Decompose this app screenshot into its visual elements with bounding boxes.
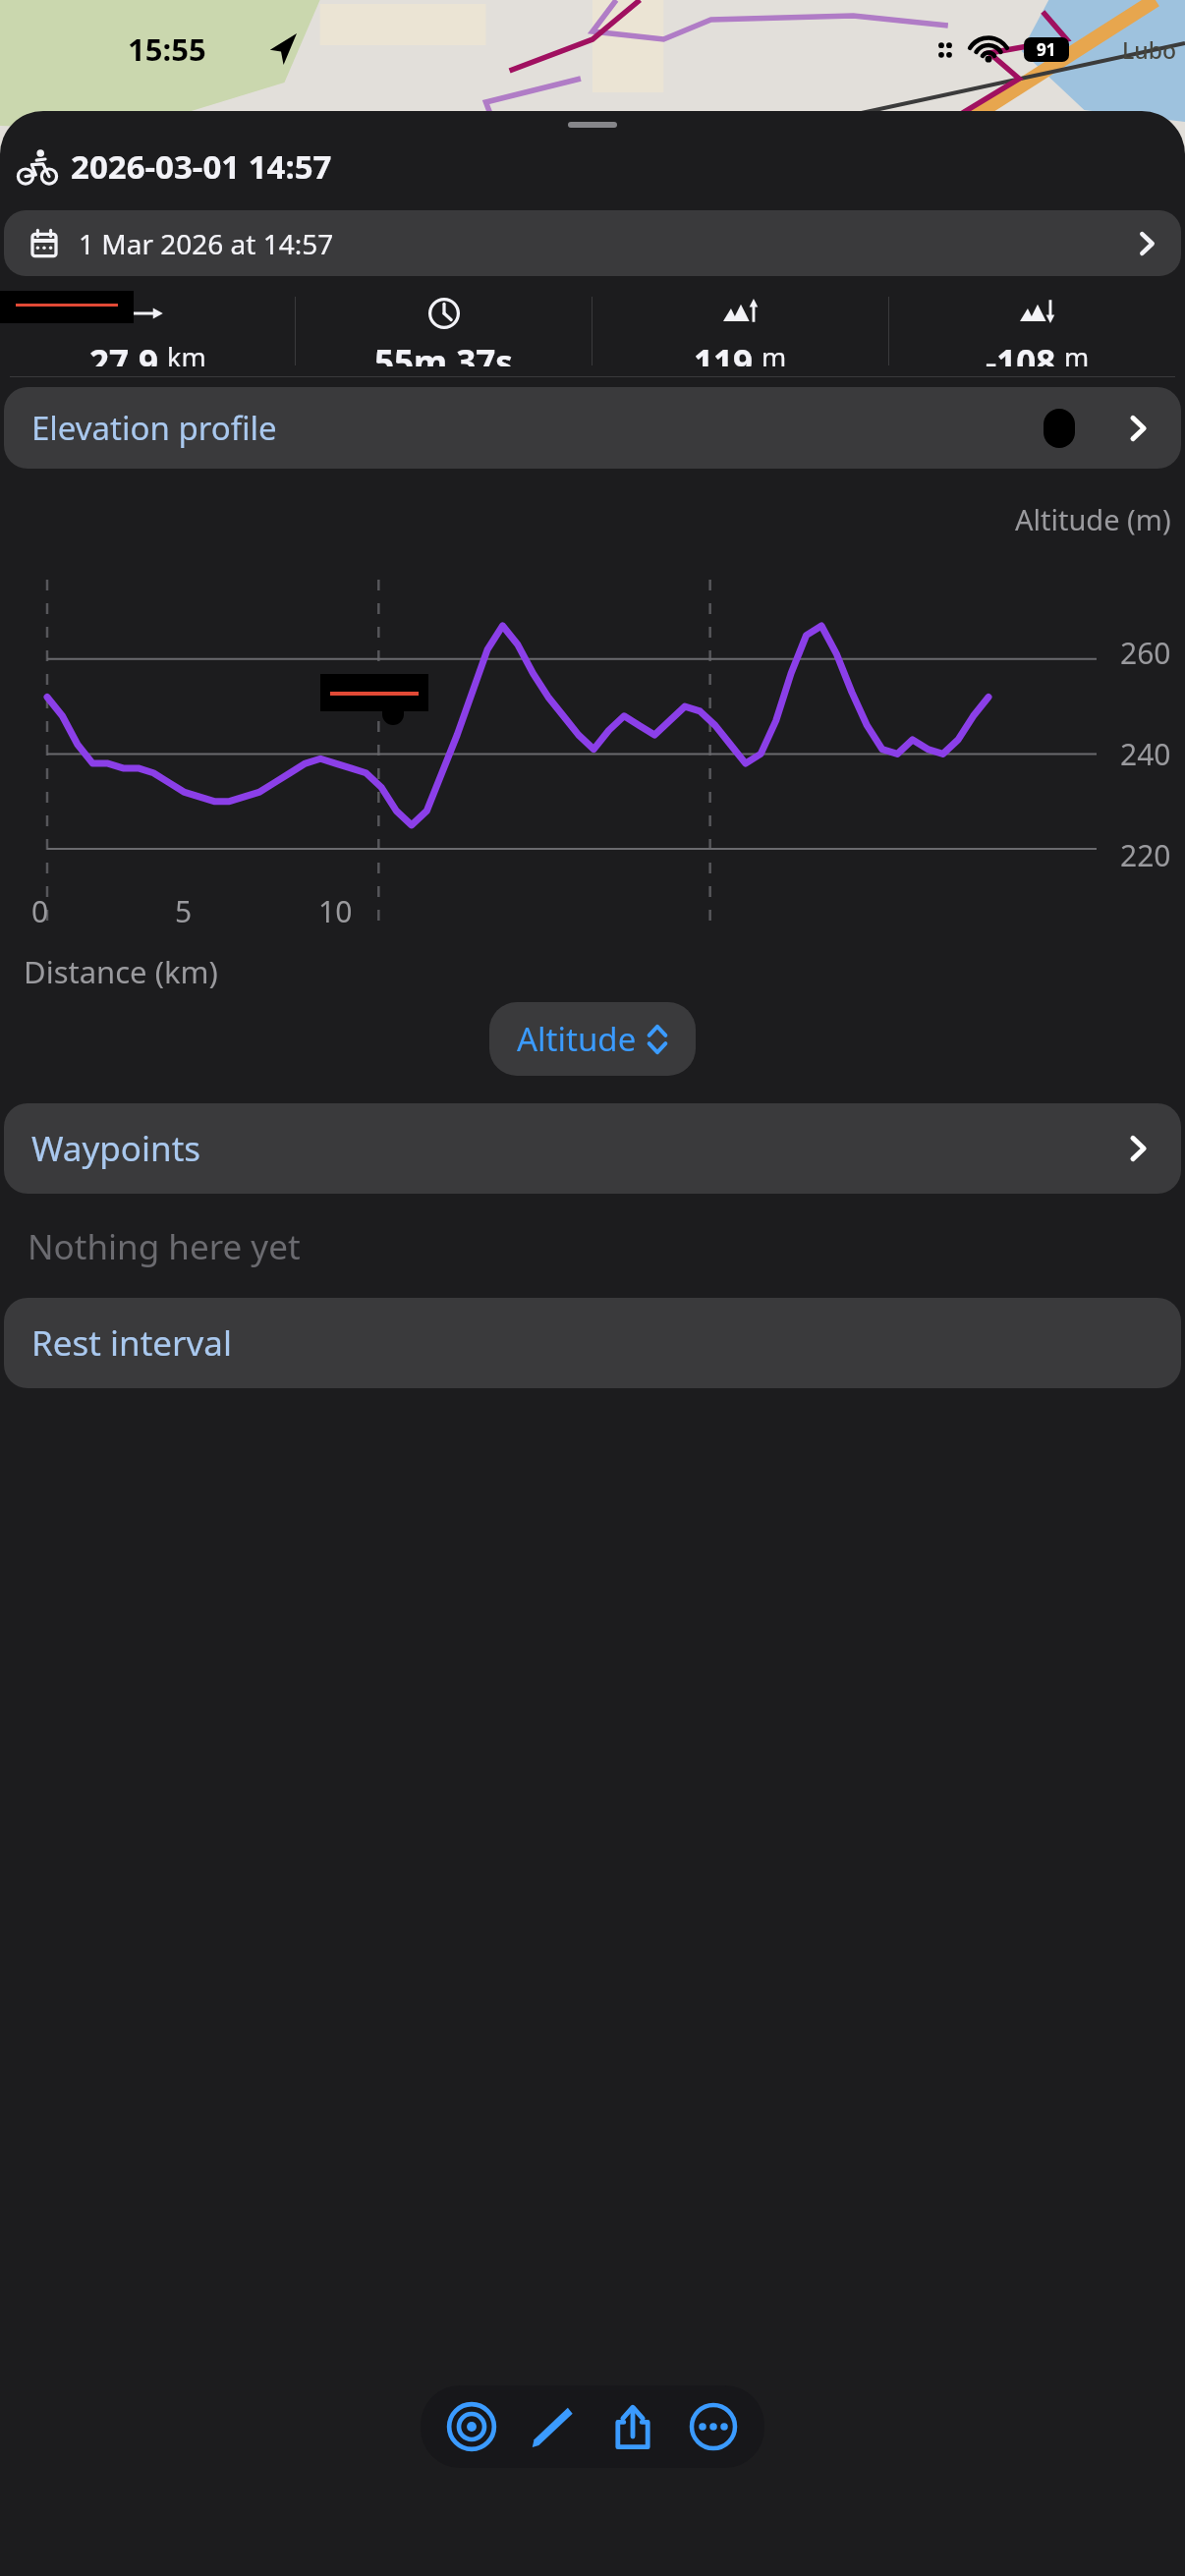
staticText: Rest interval	[31, 1319, 232, 1367]
button[interactable]: Altitude	[489, 1002, 696, 1076]
staticText: Lubo	[1122, 34, 1177, 65]
button[interactable]: Show track	[442, 2397, 501, 2456]
staticText: 5	[175, 891, 193, 931]
staticText: 10	[318, 891, 353, 931]
staticText: 15:55	[128, 28, 206, 70]
staticText: Altitude (m)	[1015, 500, 1171, 538]
button[interactable]: Edit	[523, 2397, 582, 2456]
staticText: 119	[694, 339, 754, 366]
staticText: Elevation profile	[31, 406, 277, 450]
staticText: 260	[1120, 633, 1171, 673]
staticText: 240	[1120, 734, 1171, 774]
staticText: km	[167, 339, 206, 366]
button[interactable]: 1 Mar 2026 at 14:57	[4, 210, 1181, 276]
button[interactable]: Elevation profile	[4, 387, 1181, 469]
staticText: 220	[1120, 835, 1171, 875]
staticText: Distance (km)	[24, 951, 218, 992]
button[interactable]: More options	[684, 2397, 743, 2456]
staticText: Waypoints	[31, 1125, 201, 1172]
staticText: 1 Mar 2026 at 14:57	[79, 225, 334, 262]
staticText: m	[1064, 339, 1090, 366]
staticText: -108	[986, 339, 1056, 366]
staticText: 91	[1037, 38, 1056, 61]
staticText: 55m 37s	[374, 339, 513, 366]
button[interactable]: Rest interval	[4, 1298, 1181, 1388]
button[interactable]: Waypoints	[4, 1103, 1181, 1194]
staticText: 0	[31, 891, 49, 931]
staticText: 27,9	[89, 339, 159, 366]
staticText: m	[762, 339, 787, 366]
staticText: Nothing here yet	[28, 1223, 301, 1270]
button[interactable]: Share	[603, 2397, 662, 2456]
staticText: Altitude	[517, 1017, 637, 1061]
staticText: 2026-03-01 14:57	[71, 144, 332, 189]
